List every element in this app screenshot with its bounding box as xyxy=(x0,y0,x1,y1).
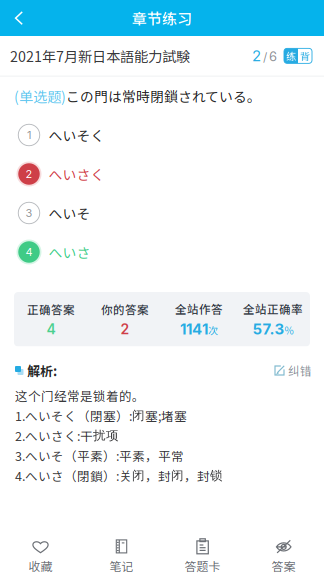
staticText: 次 xyxy=(208,323,218,337)
staticText: 解析: xyxy=(27,361,57,380)
button[interactable]: 3 xyxy=(0,193,324,232)
staticText: 2 xyxy=(120,321,129,337)
button[interactable]: 收藏 xyxy=(0,524,81,576)
staticText: 笔记 xyxy=(109,557,133,574)
staticText: 57.3 xyxy=(252,320,284,338)
staticText: へいさく xyxy=(48,164,104,184)
staticText: 2.へいさく:干扰项 xyxy=(15,426,119,445)
staticText: 4.へいさ（閉鎖）:关闭，封闭，封锁 xyxy=(15,466,223,485)
staticText: 2 xyxy=(25,167,32,181)
staticText: 1141 xyxy=(180,320,208,338)
staticText: 全站作答 xyxy=(175,300,223,317)
button[interactable]: 4 xyxy=(0,232,324,271)
staticText: 2 xyxy=(252,47,261,65)
staticText: % xyxy=(284,323,293,337)
button[interactable]: 笔记 xyxy=(81,524,162,576)
staticText: この門は常時閉鎖されている。 xyxy=(66,86,261,106)
staticText: へいそく xyxy=(48,125,104,145)
staticText: 3.へいそ（平素）:平素，平常 xyxy=(15,446,184,465)
staticText: / xyxy=(263,50,267,64)
staticText: 答案 xyxy=(271,557,295,574)
staticText: へいそ xyxy=(48,203,90,223)
staticText: 答题卡 xyxy=(184,557,220,574)
staticText: 练 xyxy=(286,49,296,63)
staticText: 这个门经常是锁着的。 xyxy=(15,386,145,405)
staticText: 1 xyxy=(27,128,31,142)
staticText: 正确答案 xyxy=(27,301,75,318)
staticText: へいさ xyxy=(48,242,90,262)
button[interactable]: 答题卡 xyxy=(162,524,243,576)
staticText: 你的答案 xyxy=(101,301,149,318)
staticText: 6 xyxy=(269,49,277,64)
staticText: 全站正确率 xyxy=(243,300,303,317)
button[interactable]: 2 xyxy=(0,154,324,193)
button[interactable]: Back xyxy=(0,0,38,36)
staticText: 章节练习 xyxy=(132,7,192,29)
button[interactable]: 纠错 xyxy=(274,362,312,379)
staticText: 1.へいそく（閉塞）:闭塞;堵塞 xyxy=(15,406,187,425)
staticText: 4 xyxy=(25,245,32,259)
button[interactable]: 练 xyxy=(284,48,312,63)
staticText: 2021年7月新日本語能力試験 xyxy=(10,45,190,66)
staticText: 背 xyxy=(300,49,310,63)
staticText: 纠错 xyxy=(288,362,312,379)
staticText: (单选题) xyxy=(14,86,66,106)
staticText: 4 xyxy=(46,321,55,337)
staticText: 收藏 xyxy=(28,557,52,574)
button[interactable]: 答案 xyxy=(243,524,324,576)
staticText: 3 xyxy=(25,206,32,220)
button[interactable]: 1 xyxy=(0,115,324,154)
